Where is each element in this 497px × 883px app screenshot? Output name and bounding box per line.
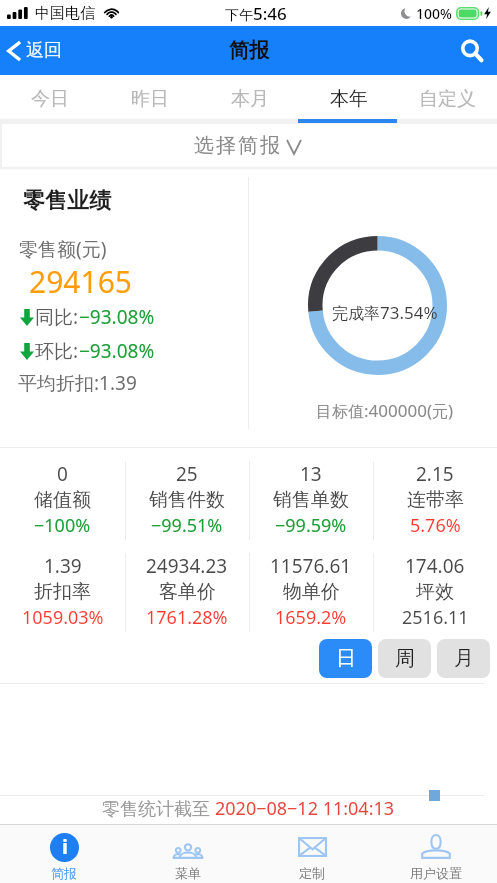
- staticText: 物单价: [283, 580, 340, 604]
- button[interactable]: i: [2, 825, 126, 883]
- staticText: −93.08%: [79, 304, 155, 330]
- staticText: 用户设置: [410, 865, 462, 881]
- button[interactable]: 24934.23: [125, 540, 249, 632]
- button[interactable]: 今日: [0, 75, 100, 119]
- staticText: −93.08%: [79, 338, 155, 364]
- staticText: 同比:: [35, 304, 79, 330]
- staticText: i: [62, 833, 68, 860]
- staticText: 完成率73.54%: [332, 301, 438, 324]
- staticText: 1761.28%: [146, 605, 228, 630]
- staticText: −100%: [34, 513, 91, 538]
- staticText: 目标值:400000(元): [316, 399, 454, 422]
- staticText: 月: [454, 646, 474, 671]
- staticText: 昨日: [131, 87, 169, 111]
- staticText: 25: [176, 461, 198, 487]
- staticText: 储值额: [34, 488, 91, 512]
- staticText: 下午5:46: [225, 2, 287, 25]
- button[interactable]: 本月: [200, 75, 299, 119]
- staticText: 周: [395, 646, 415, 671]
- staticText: 菜单: [175, 865, 201, 881]
- button[interactable]: 2.15: [373, 448, 497, 540]
- staticText: 本年: [330, 87, 368, 111]
- staticText: 日: [336, 646, 356, 671]
- staticText: 销售单数: [273, 488, 349, 512]
- staticText: 简报: [229, 38, 269, 63]
- staticText: 自定义: [419, 87, 476, 111]
- button[interactable]: 自定义: [398, 75, 497, 119]
- button[interactable]: 月: [437, 639, 490, 678]
- staticText: 销售件数: [149, 488, 225, 512]
- button[interactable]: 13: [249, 448, 373, 540]
- button[interactable]: 昨日: [100, 75, 200, 119]
- staticText: 零售额(元): [19, 236, 107, 262]
- staticText: 13: [300, 461, 322, 487]
- staticText: 环比:: [35, 338, 79, 364]
- button[interactable]: 0: [0, 448, 125, 540]
- staticText: 24934.23: [146, 553, 228, 579]
- button[interactable]: 日: [319, 639, 372, 678]
- button[interactable]: 用户设置: [374, 825, 497, 883]
- staticText: 1.39: [44, 553, 82, 579]
- button[interactable]: 25: [125, 448, 249, 540]
- staticText: 294165: [29, 261, 132, 302]
- staticText: 2516.11: [402, 605, 469, 630]
- staticText: 折扣率: [34, 580, 91, 604]
- staticText: 11576.61: [270, 553, 352, 579]
- button[interactable]: 选择简报: [2, 124, 497, 167]
- staticText: 定制: [299, 865, 325, 881]
- staticText: 本月: [231, 87, 269, 111]
- staticText: 零售统计截至: [102, 796, 215, 821]
- staticText: 简报: [51, 865, 77, 881]
- staticText: 平均折扣:1.39: [18, 370, 137, 396]
- staticText: 零售业绩: [23, 187, 111, 215]
- staticText: −99.51%: [151, 513, 223, 538]
- staticText: 1059.03%: [22, 605, 104, 630]
- button[interactable]: 菜单: [126, 825, 250, 883]
- staticText: 174.06: [405, 553, 465, 579]
- staticText: 5.76%: [410, 513, 461, 538]
- staticText: 2020−08−12 11:04:13: [215, 796, 395, 821]
- staticText: 2.15: [416, 461, 454, 487]
- staticText: 0: [57, 461, 68, 487]
- staticText: −99.59%: [275, 513, 347, 538]
- button[interactable]: 定制: [250, 825, 374, 883]
- button[interactable]: 返回: [0, 26, 72, 75]
- staticText: 1659.2%: [275, 605, 347, 630]
- button[interactable]: Search: [447, 26, 497, 75]
- button[interactable]: 174.06: [373, 540, 497, 632]
- button[interactable]: 11576.61: [249, 540, 373, 632]
- staticText: 选择简报: [193, 133, 281, 158]
- button[interactable]: 1.39: [0, 540, 125, 632]
- staticText: 坪效: [416, 580, 454, 604]
- staticText: 中国电信: [35, 4, 95, 23]
- staticText: 返回: [26, 39, 62, 62]
- staticText: 今日: [31, 87, 69, 111]
- staticText: 100%: [416, 4, 452, 23]
- staticText: 连带率: [407, 488, 464, 512]
- button[interactable]: 本年: [299, 75, 398, 119]
- button[interactable]: 周: [378, 639, 431, 678]
- staticText: 客单价: [159, 580, 216, 604]
